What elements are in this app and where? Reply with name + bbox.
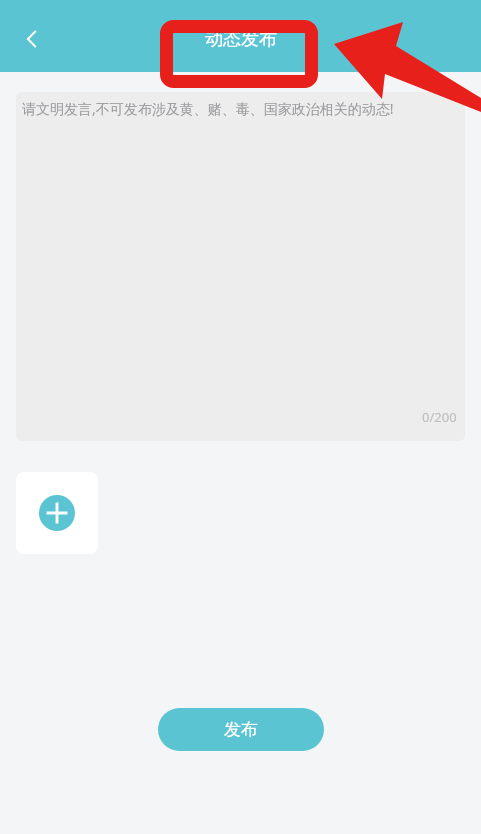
- button[interactable]: 发布: [158, 708, 324, 751]
- staticText: 发布: [224, 719, 258, 740]
- button[interactable]: 动态发布: [205, 28, 277, 51]
- button[interactable]: Back: [8, 15, 56, 63]
- staticText: 请文明发言,不可发布涉及黄、赌、毒、国家政治相关的动态!: [22, 99, 394, 118]
- staticText: 0/200: [422, 408, 457, 426]
- staticText: 动态发布: [205, 28, 277, 51]
- button[interactable]: 请文明发言,不可发布涉及黄、赌、毒、国家政治相关的动态!: [16, 92, 465, 441]
- button[interactable]: Add photo: [16, 472, 98, 554]
